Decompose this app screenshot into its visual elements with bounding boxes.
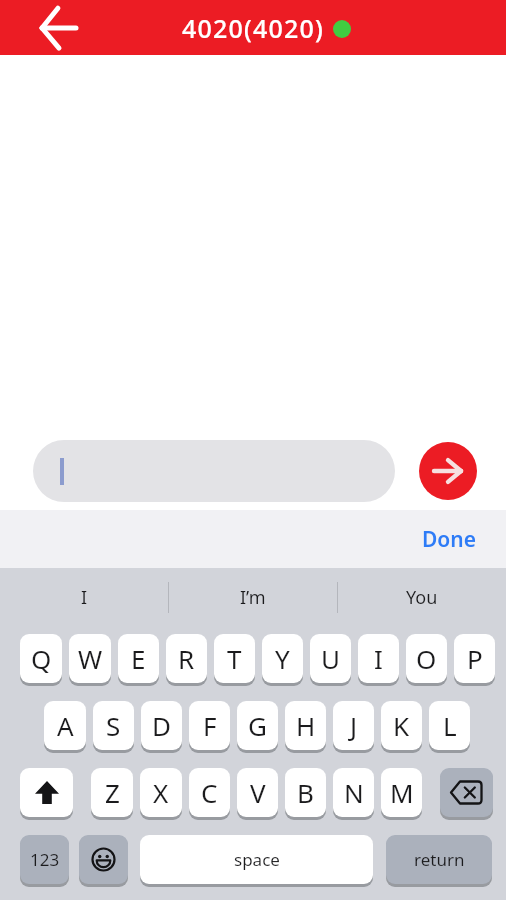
- staticText: Done: [422, 525, 477, 554]
- staticText: G: [248, 708, 267, 743]
- button[interactable]: R: [166, 634, 207, 684]
- button[interactable]: M: [381, 768, 422, 818]
- staticText: N: [344, 775, 364, 810]
- button[interactable]: J: [333, 701, 374, 751]
- staticText: M: [390, 775, 414, 810]
- button[interactable]: [32, 1, 86, 55]
- staticText: T: [227, 641, 242, 676]
- button[interactable]: 123: [20, 835, 69, 885]
- button[interactable]: Y: [262, 634, 303, 684]
- staticText: O: [416, 641, 437, 676]
- button[interactable]: T: [214, 634, 255, 684]
- staticText: A: [57, 708, 74, 743]
- staticText: X: [153, 775, 169, 810]
- staticText: E: [131, 641, 146, 676]
- staticText: I’m: [240, 585, 266, 610]
- button[interactable]: L: [429, 701, 470, 751]
- staticText: space: [234, 848, 280, 871]
- button[interactable]: F: [189, 701, 230, 751]
- button[interactable]: P: [454, 634, 495, 684]
- button[interactable]: [33, 440, 395, 502]
- button[interactable]: W: [69, 634, 111, 684]
- staticText: U: [321, 641, 341, 676]
- button[interactable]: I: [358, 634, 399, 684]
- button[interactable]: D: [141, 701, 182, 751]
- staticText: return: [414, 848, 465, 871]
- staticText: I: [81, 585, 88, 610]
- staticText: 123: [30, 848, 60, 871]
- button[interactable]: I: [0, 568, 168, 627]
- button[interactable]: O: [406, 634, 447, 684]
- staticText: S: [106, 708, 121, 743]
- button[interactable]: H: [285, 701, 326, 751]
- button[interactable]: U: [310, 634, 351, 684]
- button[interactable]: C: [189, 768, 230, 818]
- staticText: You: [406, 585, 438, 610]
- button[interactable]: A: [44, 701, 86, 751]
- staticText: R: [178, 641, 195, 676]
- button[interactable]: [20, 768, 73, 818]
- button[interactable]: I’m: [169, 568, 337, 627]
- staticText: Q: [31, 641, 52, 676]
- button[interactable]: [440, 768, 493, 818]
- button[interactable]: Q: [20, 634, 62, 684]
- button[interactable]: K: [381, 701, 422, 751]
- button[interactable]: N: [333, 768, 374, 818]
- button[interactable]: S: [93, 701, 134, 751]
- staticText: 4020(4020): [182, 11, 325, 45]
- button[interactable]: [419, 442, 477, 500]
- staticText: K: [393, 708, 410, 743]
- staticText: H: [296, 708, 316, 743]
- staticText: D: [152, 708, 171, 743]
- button[interactable]: G: [237, 701, 278, 751]
- button[interactable]: X: [140, 768, 182, 818]
- staticText: W: [78, 641, 103, 676]
- staticText: B: [297, 775, 314, 810]
- staticText: C: [201, 775, 218, 810]
- staticText: I: [374, 641, 383, 676]
- staticText: V: [250, 775, 266, 810]
- staticText: L: [443, 708, 457, 743]
- button[interactable]: E: [118, 634, 159, 684]
- staticText: J: [350, 708, 358, 743]
- staticText: Y: [275, 641, 290, 676]
- button[interactable]: Z: [91, 768, 133, 818]
- button[interactable]: return: [386, 835, 492, 885]
- staticText: Z: [105, 775, 120, 810]
- button[interactable]: You: [338, 568, 506, 627]
- button[interactable]: V: [237, 768, 278, 818]
- button[interactable]: B: [285, 768, 326, 818]
- button[interactable]: Done: [422, 525, 477, 554]
- staticText: F: [203, 708, 217, 743]
- staticText: P: [467, 641, 483, 676]
- button[interactable]: [79, 835, 128, 885]
- button[interactable]: space: [140, 835, 373, 885]
